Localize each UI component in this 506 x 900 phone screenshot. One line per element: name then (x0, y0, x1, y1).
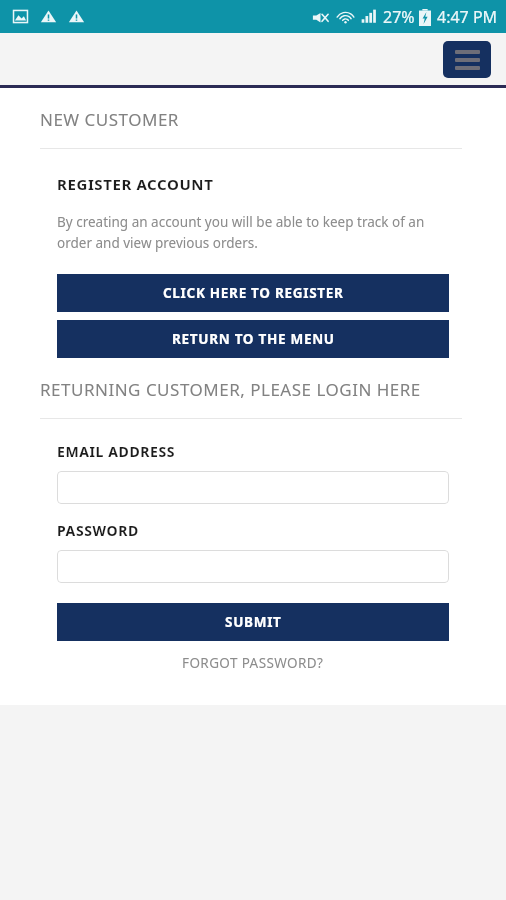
staticText: FORGOT PASSWORD? (182, 654, 324, 672)
button[interactable] (57, 471, 449, 504)
button[interactable]: FORGOT PASSWORD? (57, 654, 449, 672)
staticText: SUBMIT (225, 613, 282, 631)
staticText: 27% (383, 6, 415, 28)
staticText: EMAIL ADDRESS (57, 442, 176, 461)
button[interactable]: Menu (443, 41, 491, 78)
button[interactable]: RETURN TO THE MENU (57, 320, 449, 358)
staticText: RETURNING CUSTOMER, PLEASE LOGIN HERE (40, 378, 421, 401)
staticText: PASSWORD (57, 521, 139, 540)
staticText: 4:47 PM (437, 6, 498, 28)
staticText: CLICK HERE TO REGISTER (163, 284, 344, 302)
staticText: NEW CUSTOMER (40, 108, 179, 131)
staticText: RETURN TO THE MENU (172, 330, 335, 348)
button[interactable] (57, 550, 449, 583)
button[interactable]: CLICK HERE TO REGISTER (57, 274, 449, 312)
staticText: REGISTER ACCOUNT (57, 174, 214, 194)
staticText: By creating an account you will be able … (57, 213, 454, 252)
button[interactable]: SUBMIT (57, 603, 449, 641)
